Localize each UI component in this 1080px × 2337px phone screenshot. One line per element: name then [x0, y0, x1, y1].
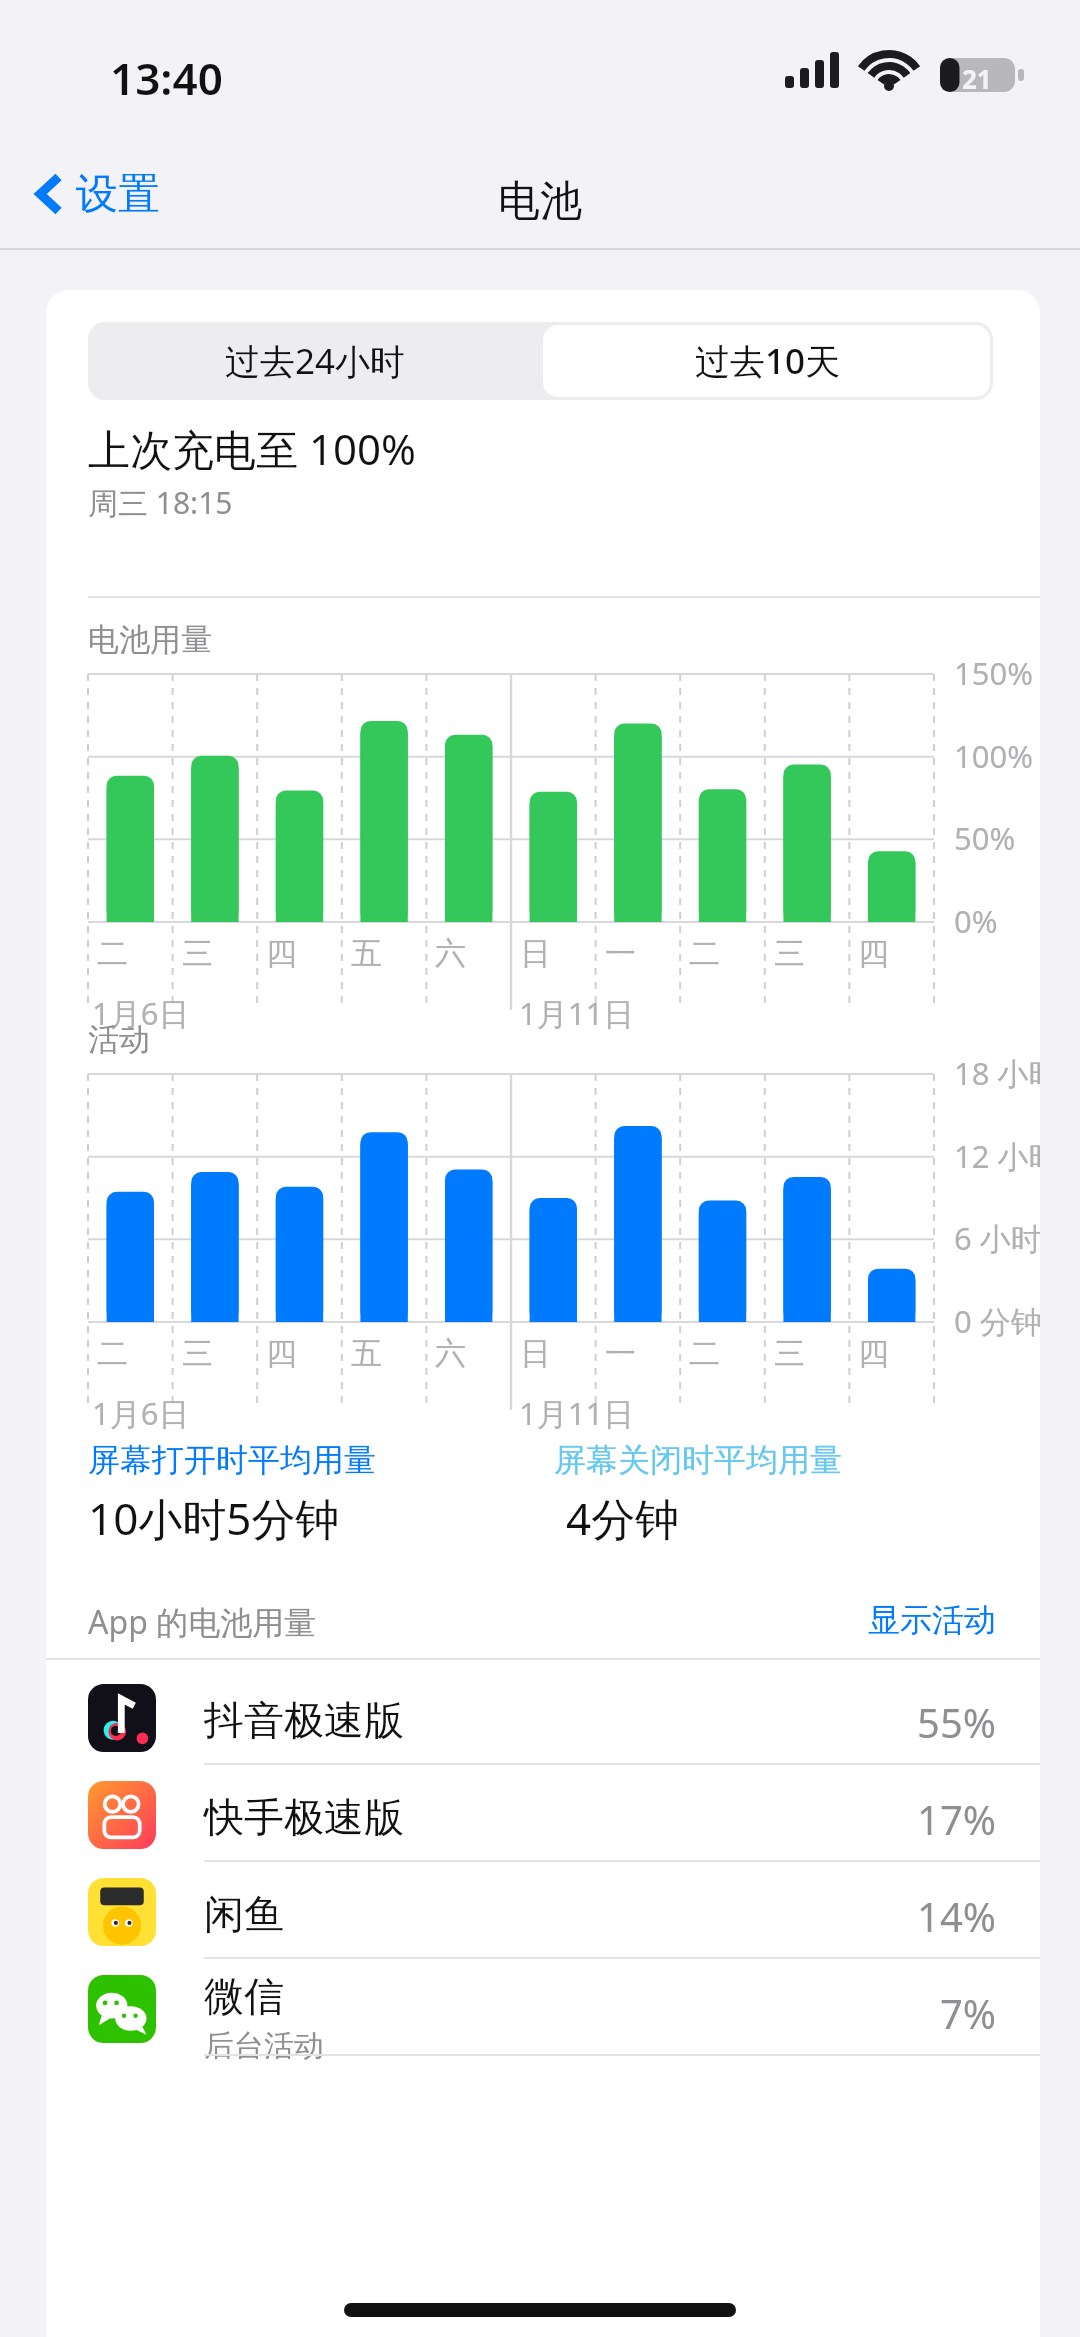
staticText: 50%: [954, 817, 1016, 859]
button[interactable]: 闲鱼: [46, 1862, 1040, 1959]
staticText: 0 分钟: [954, 1300, 1040, 1342]
staticText: 抖音极速版: [204, 1695, 404, 1745]
staticText: 二: [97, 934, 128, 973]
staticText: 过去10天: [695, 337, 841, 385]
staticText: 17%: [866, 1792, 996, 1846]
staticText: 13:40: [110, 48, 223, 108]
staticText: 微信: [204, 1971, 284, 2021]
staticText: 二: [689, 1334, 720, 1373]
staticText: 四: [266, 934, 297, 973]
staticText: 55%: [866, 1695, 996, 1749]
staticText: 过去24小时: [225, 337, 406, 385]
staticText: 电池用量: [88, 620, 212, 659]
staticText: 日: [520, 1334, 551, 1373]
button[interactable]: 过去10天: [543, 322, 993, 400]
staticText: 屏幕关闭时平均用量: [554, 1440, 842, 1480]
staticText: 电池: [0, 175, 1080, 228]
staticText: 三: [182, 1334, 213, 1373]
staticText: 二: [97, 1334, 128, 1373]
staticText: 14%: [866, 1889, 996, 1943]
staticText: 三: [182, 934, 213, 973]
staticText: 五: [351, 1334, 382, 1373]
staticText: 4分钟: [566, 1488, 680, 1548]
staticText: 100%: [954, 735, 1033, 777]
staticText: 1月6日: [92, 1392, 190, 1434]
staticText: 上次充电至 100%: [88, 420, 416, 477]
button[interactable]: 过去24小时: [88, 322, 543, 400]
button[interactable]: 设置: [22, 158, 170, 230]
staticText: 四: [858, 1334, 889, 1373]
staticText: 屏幕打开时平均用量: [88, 1440, 376, 1480]
staticText: 21: [962, 61, 992, 96]
button[interactable]: 显示活动: [796, 1600, 996, 1640]
staticText: 四: [266, 1334, 297, 1373]
staticText: 显示活动: [868, 1600, 996, 1640]
staticText: 闲鱼: [204, 1889, 284, 1939]
staticText: 快手极速版: [204, 1792, 404, 1842]
button[interactable]: 微信: [46, 1959, 1040, 2056]
staticText: 六: [435, 1334, 466, 1373]
staticText: 10小时5分钟: [88, 1488, 340, 1548]
button[interactable]: 快手极速版: [46, 1765, 1040, 1862]
button[interactable]: 抖音极速版: [46, 1668, 1040, 1765]
staticText: 三: [774, 1334, 805, 1373]
staticText: 150%: [954, 652, 1033, 694]
staticText: 三: [774, 934, 805, 973]
staticText: App 的电池用量: [88, 1600, 317, 1644]
staticText: 1月11日: [519, 992, 635, 1034]
staticText: 周三 18:15: [88, 482, 233, 523]
staticText: 0%: [954, 900, 998, 942]
staticText: 1月11日: [519, 1392, 635, 1434]
staticText: 后台活动: [204, 2027, 324, 2065]
staticText: 18 小时: [954, 1052, 1040, 1094]
staticText: 设置: [76, 168, 160, 221]
staticText: 一: [605, 934, 636, 973]
staticText: 日: [520, 934, 551, 973]
staticText: 7%: [866, 1986, 996, 2040]
staticText: 活动: [88, 1020, 150, 1059]
staticText: 五: [351, 934, 382, 973]
staticText: 一: [605, 1334, 636, 1373]
staticText: 二: [689, 934, 720, 973]
staticText: 6 小时: [954, 1217, 1040, 1259]
staticText: 12 小时: [954, 1135, 1040, 1177]
staticText: 1月6日: [92, 992, 190, 1034]
staticText: 四: [858, 934, 889, 973]
staticText: 六: [435, 934, 466, 973]
